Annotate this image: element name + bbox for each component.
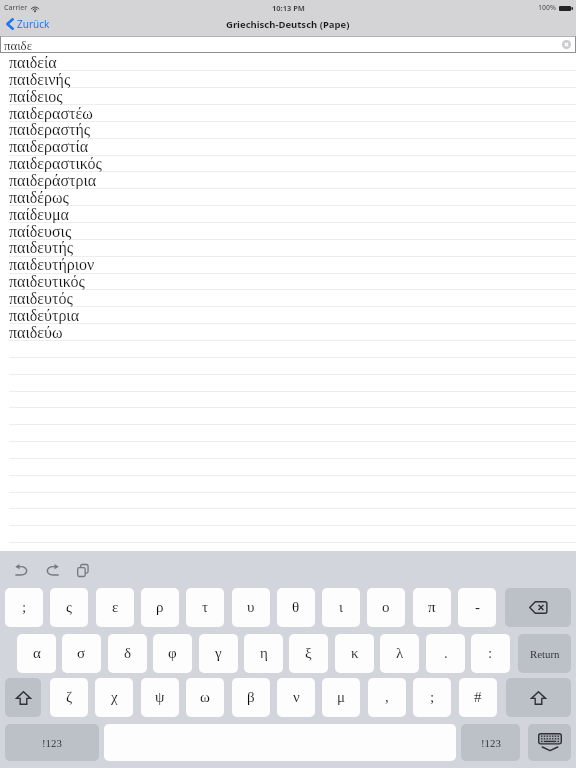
staticText: ο [382,599,390,616]
button[interactable]: παιδευτής [0,239,576,256]
staticText: , [385,689,389,706]
button[interactable]: παιδευτός [0,290,576,307]
staticText: α [33,645,41,662]
button[interactable]: παιδεραστής [0,121,576,138]
staticText: παιδε [4,39,33,53]
staticText: παίδευσις [9,223,72,240]
staticText: - [475,599,480,616]
button[interactable]: ; [5,588,43,627]
button[interactable]: ο [367,588,405,627]
button[interactable]: ς [50,588,88,627]
button[interactable]: η [244,634,283,673]
button[interactable]: παιδεραστέω [0,105,576,122]
button[interactable]: Redo [40,558,64,582]
button[interactable]: Undo [10,558,34,582]
staticText: ξ [305,645,312,662]
button[interactable]: παιδεία [0,54,576,71]
button[interactable]: μ [322,678,360,717]
staticText: ε [112,599,119,616]
button[interactable]: παιδευτικός [0,273,576,290]
button[interactable]: ρ [141,588,179,627]
staticText: παιδεραστικός [9,155,102,172]
button[interactable]: ψ [141,678,179,717]
staticText: λ [396,645,404,662]
button[interactable]: κ [335,634,374,673]
staticText: Carrier [4,3,28,13]
button[interactable]: - [458,588,496,627]
button[interactable]: Return [518,634,571,673]
staticText: ; [22,599,27,616]
staticText: δ [124,645,132,662]
staticText: Return [530,648,560,660]
button[interactable]: π [413,588,451,627]
staticText: ζ [66,689,73,706]
button[interactable]: παίδειος [0,88,576,105]
button[interactable]: παίδευσις [0,223,576,240]
button[interactable]: δ [108,634,147,673]
button[interactable]: σ [62,634,101,673]
staticText: π [428,599,436,616]
staticText: ι [339,599,344,616]
button[interactable]: ; [413,678,451,717]
staticText: Griechisch-Deutsch (Pape) [226,18,350,31]
staticText: !123 [481,737,501,749]
button[interactable]: παιδέρως [0,189,576,206]
button[interactable]: Backspace [505,588,571,627]
staticText: ν [293,689,300,706]
button[interactable]: Paste [71,558,95,582]
staticText: Zurück [17,17,50,31]
staticText: παιδεραστής [9,121,91,138]
button[interactable]: ξ [289,634,328,673]
staticText: ψ [155,689,165,706]
button[interactable]: ω [186,678,224,717]
button[interactable]: παιδεραστία [0,138,576,155]
button[interactable]: παιδεύω [0,324,576,341]
button[interactable]: παιδεύτρια [0,307,576,324]
button[interactable]: θ [277,588,315,627]
button[interactable]: παιδεραστικός [0,155,576,172]
button[interactable]: Shift [506,678,571,717]
staticText: παιδεραστέω [9,105,93,122]
button[interactable]: . [426,634,465,673]
staticText: ς [66,599,72,616]
button[interactable]: !123 [461,724,520,761]
button[interactable]: λ [380,634,419,673]
button[interactable]: υ [232,588,270,627]
staticText: κ [351,645,359,662]
button[interactable]: β [232,678,270,717]
staticText: ; [430,689,435,706]
button[interactable]: !123 [5,724,99,761]
button[interactable]: Zurück [6,17,50,31]
staticText: παιδεραστία [9,138,89,155]
staticText: παιδέρως [9,189,69,206]
button[interactable]: # [459,678,497,717]
button[interactable]: , [368,678,406,717]
button[interactable]: ζ [50,678,88,717]
button[interactable]: παιδε [0,36,576,53]
button[interactable]: ι [322,588,360,627]
button[interactable]: τ [186,588,224,627]
button[interactable]: παιδευτήριον [0,256,576,273]
staticText: η [260,645,268,662]
staticText: ω [200,689,210,706]
button[interactable]: Shift [5,678,41,717]
staticText: παιδευτής [9,239,74,256]
button[interactable]: φ [153,634,192,673]
staticText: παιδευτήριον [9,256,95,273]
staticText: τ [202,599,209,616]
button[interactable]: : [471,634,510,673]
button[interactable]: παιδεράστρια [0,172,576,189]
button[interactable]: ε [96,588,134,627]
staticText: υ [247,599,255,616]
button[interactable]: α [17,634,56,673]
staticText: παιδεύω [9,324,63,341]
button[interactable]: Hide keyboard [528,724,571,761]
staticText: θ [292,599,300,616]
button[interactable]: χ [95,678,133,717]
button[interactable]: γ [199,634,238,673]
staticText: 100% [538,3,556,13]
button[interactable]: παίδευμα [0,206,576,223]
button[interactable]: παιδεινής [0,71,576,88]
button[interactable]: ν [277,678,315,717]
